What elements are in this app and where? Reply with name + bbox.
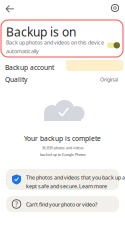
- staticText: Backup account: [5, 63, 54, 72]
- staticText: Your backup is complete: [24, 134, 101, 143]
- staticText: 36,830 photos and videos backed up to Go…: [39, 145, 85, 157]
- button[interactable]: The photos and videos that you back up a…: [6, 169, 119, 190]
- button[interactable]: Settings: [107, 0, 123, 16]
- button[interactable]: ?: [6, 196, 119, 212]
- button[interactable]: Backup is on: [1, 20, 123, 57]
- button[interactable]: Back: [2, 1, 18, 17]
- button[interactable]: Quality: [0, 73, 125, 85]
- staticText: Original: [100, 76, 118, 83]
- staticText: Can't find your photo or video?: [26, 201, 97, 208]
- staticText: The photos and videos that you back up a…: [26, 174, 125, 190]
- staticText: Backup is on: [6, 24, 76, 40]
- staticText: Quality: [5, 75, 27, 84]
- staticText: ?: [15, 200, 18, 208]
- staticText: Back up photos and videos on this device…: [6, 39, 104, 55]
- button[interactable]: Backup account: [0, 60, 125, 74]
